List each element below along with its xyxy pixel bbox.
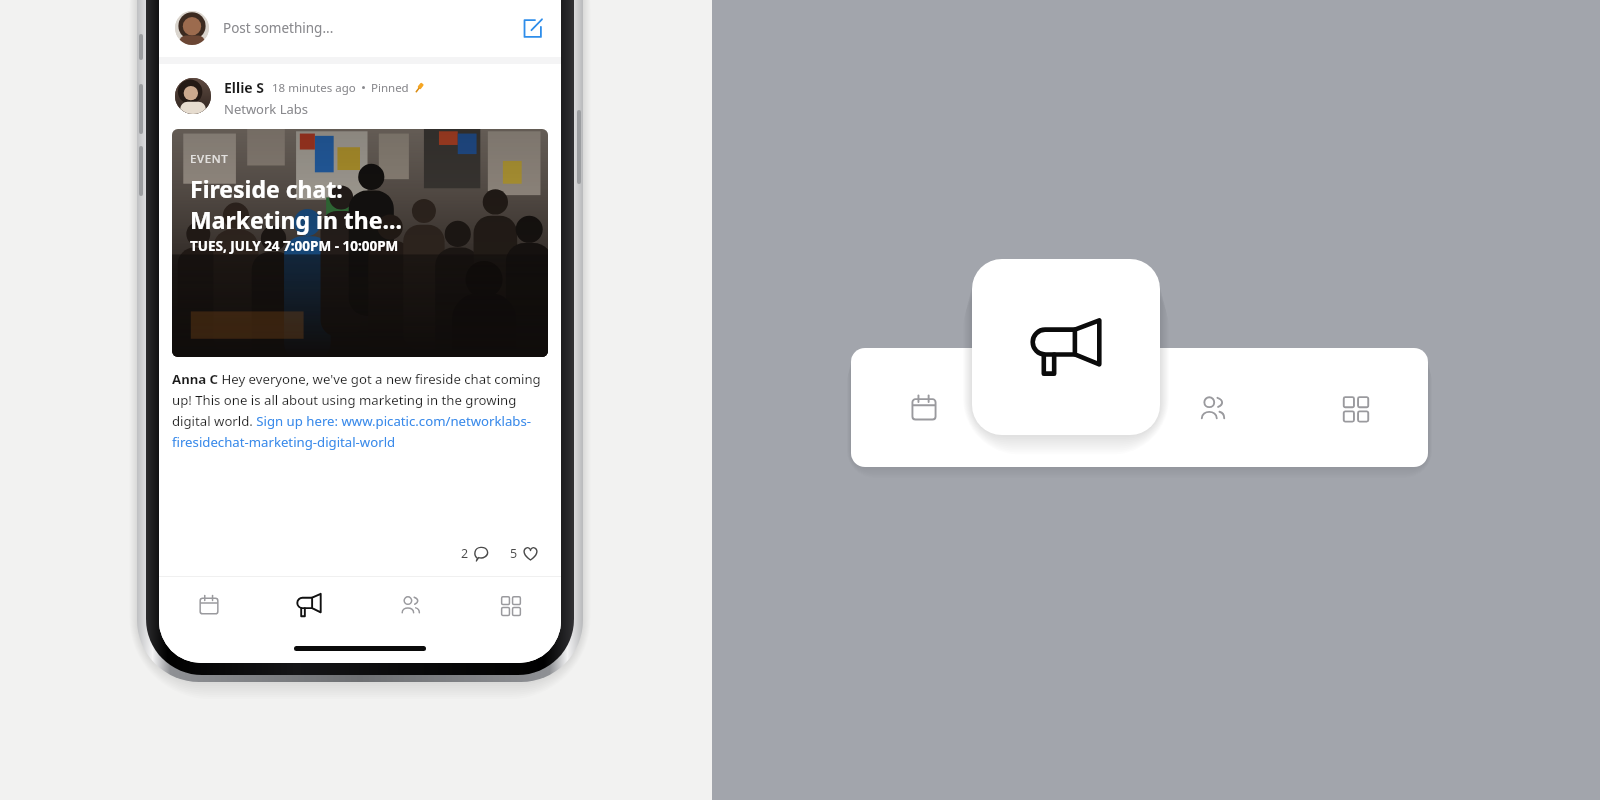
button[interactable]: Calendar	[851, 348, 996, 467]
button[interactable]: EVENT	[172, 129, 548, 357]
staticText: 2	[461, 545, 469, 562]
button[interactable]: Announcements	[996, 348, 1140, 467]
staticText: TUES, JULY 24 7:00PM - 10:00PM	[190, 237, 399, 255]
button[interactable]: Announcements	[259, 577, 359, 633]
staticText: Ellie S	[224, 78, 265, 97]
button[interactable]: Announcements	[972, 259, 1160, 435]
button[interactable]: Post something...	[159, 0, 561, 57]
staticText: 18 minutes ago	[272, 80, 356, 96]
button[interactable]: People	[359, 577, 460, 633]
button[interactable]: People	[1140, 348, 1284, 467]
button[interactable]: More	[460, 577, 561, 633]
button[interactable]: Compose post	[519, 15, 545, 41]
staticText: Marketing in the...	[190, 204, 402, 235]
staticText: Network Labs	[224, 100, 309, 118]
staticText: Pinned	[371, 80, 409, 96]
button[interactable]: 5	[510, 545, 539, 562]
button[interactable]: 2	[461, 545, 490, 562]
button[interactable]: Calendar	[159, 577, 259, 633]
button[interactable]: More	[1284, 348, 1428, 467]
staticText: Anna C Hey everyone, we've got a new fir…	[172, 370, 548, 451]
staticText: Post something...	[223, 19, 334, 37]
staticText: EVENT	[190, 151, 229, 167]
staticText: Fireside chat:	[190, 173, 343, 204]
staticText: 5	[510, 545, 518, 562]
